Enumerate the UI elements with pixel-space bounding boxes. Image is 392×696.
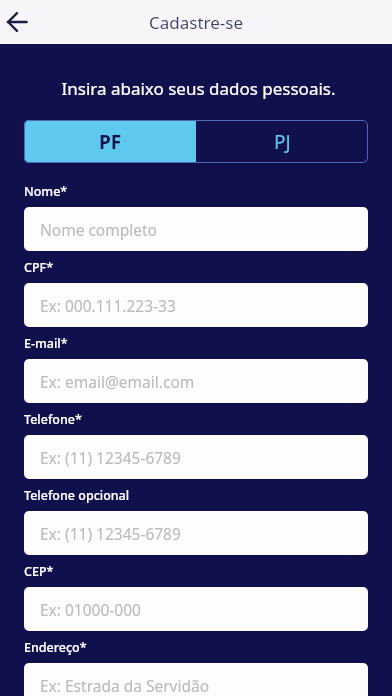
button[interactable]: Ex: 01000-000 [24, 587, 368, 631]
staticText: Cadastre-se [149, 11, 244, 34]
staticText: Ex: 000.111.223-33 [40, 295, 176, 316]
staticText: Ex: (11) 12345-6789 [40, 447, 181, 468]
staticText: Ex: (11) 12345-6789 [40, 523, 181, 544]
button[interactable]: PF [24, 120, 196, 163]
staticText: Ex: 01000-000 [40, 599, 141, 620]
staticText: Nome* [24, 183, 68, 200]
staticText: CPF* [24, 259, 54, 276]
button[interactable]: PJ [196, 120, 368, 163]
staticText: Endereço* [24, 639, 87, 656]
button[interactable]: Nome completo [24, 207, 368, 251]
button[interactable]: Back [0, 5, 34, 39]
button[interactable]: Ex: (11) 12345-6789 [24, 435, 368, 479]
staticText: Nome completo [40, 219, 157, 240]
staticText: CEP* [24, 563, 54, 580]
staticText: PF [99, 129, 122, 155]
staticText: Ex: email@email.com [40, 371, 195, 392]
staticText: Ex: Estrada da Servidão [40, 675, 210, 696]
staticText: Telefone* [24, 411, 82, 428]
staticText: PJ [274, 129, 291, 155]
button[interactable]: Ex: email@email.com [24, 359, 368, 403]
button[interactable]: Ex: 000.111.223-33 [24, 283, 368, 327]
button[interactable]: Ex: Estrada da Servidão [24, 663, 368, 696]
staticText: Telefone opcional [24, 487, 130, 504]
staticText: E-mail* [24, 335, 68, 352]
staticText: Insira abaixo seus dados pessoais. [29, 77, 368, 100]
button[interactable]: Ex: (11) 12345-6789 [24, 511, 368, 555]
